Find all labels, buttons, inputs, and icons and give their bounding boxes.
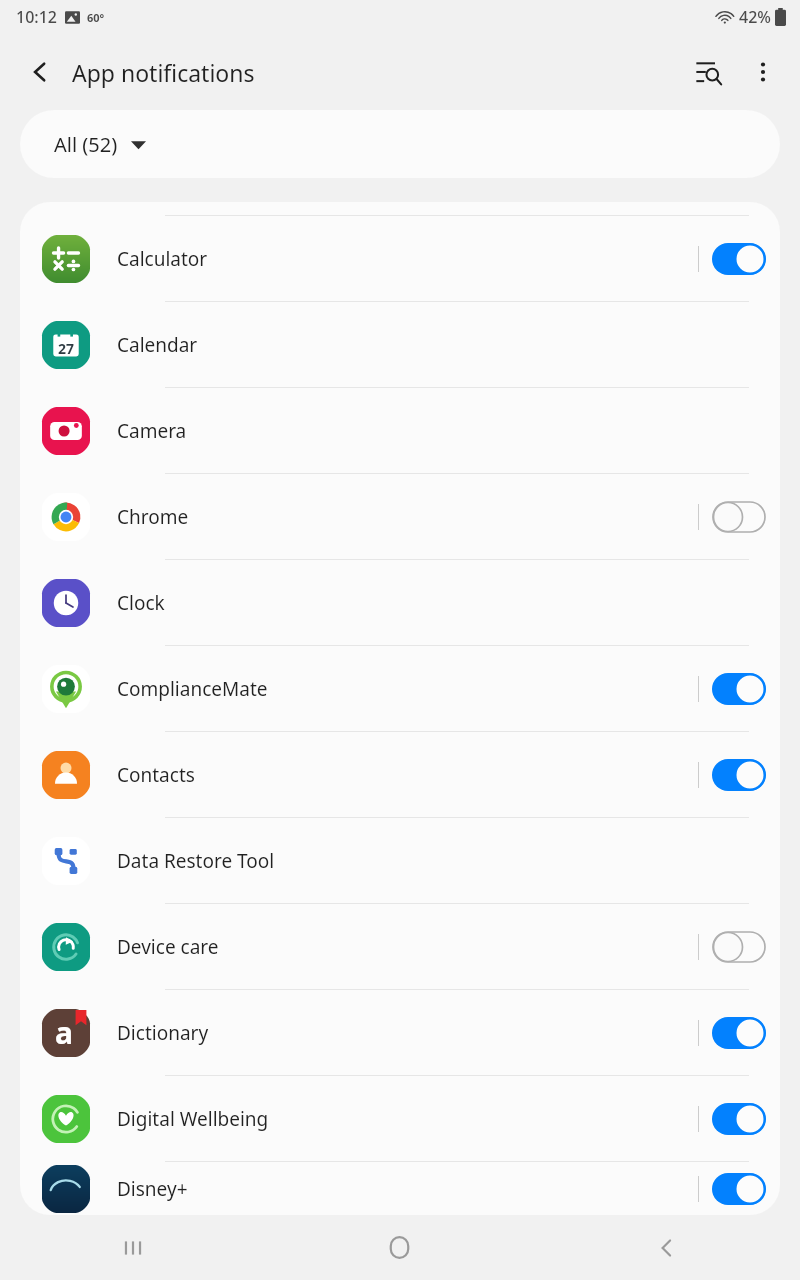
button[interactable]: All (52): [20, 110, 780, 178]
button[interactable]: Toggle notifications for Disney+: [712, 1173, 766, 1205]
button[interactable]: Toggle notifications for Digital Wellbei…: [712, 1103, 766, 1135]
staticText: All (52): [54, 131, 118, 158]
button[interactable]: Chrome: [20, 474, 780, 559]
staticText: 60°: [87, 10, 105, 25]
button[interactable]: Data Restore Tool: [20, 818, 780, 903]
staticText: Contacts: [117, 762, 698, 788]
button[interactable]: Home: [266, 1215, 533, 1280]
button[interactable]: Back: [533, 1215, 800, 1280]
button[interactable]: Search: [680, 44, 736, 100]
staticText: Chrome: [117, 504, 698, 530]
staticText: Device care: [117, 934, 698, 960]
staticText: Clock: [117, 590, 766, 616]
button[interactable]: Camera: [20, 388, 780, 473]
button[interactable]: Disney+: [20, 1162, 780, 1215]
button[interactable]: Toggle notifications for Chrome: [712, 501, 766, 533]
button[interactable]: ComplianceMate: [20, 646, 780, 731]
button[interactable]: Toggle notifications for Dictionary: [712, 1017, 766, 1049]
button[interactable]: Toggle notifications for Calculator: [712, 243, 766, 275]
button[interactable]: Device care: [20, 904, 780, 989]
button[interactable]: Digital Wellbeing: [20, 1076, 780, 1161]
button[interactable]: Contacts: [20, 732, 780, 817]
staticText: Digital Wellbeing: [117, 1106, 698, 1132]
staticText: Dictionary: [117, 1020, 698, 1046]
button[interactable]: Back: [12, 44, 68, 100]
staticText: Data Restore Tool: [117, 848, 766, 874]
button[interactable]: Toggle notifications for ComplianceMate: [712, 673, 766, 705]
button[interactable]: a: [20, 990, 780, 1075]
button[interactable]: Calculator: [20, 216, 780, 301]
button[interactable]: Clock: [20, 560, 780, 645]
staticText: 10:12: [16, 6, 57, 28]
staticText: 27: [58, 339, 75, 358]
staticText: Calculator: [117, 246, 698, 272]
button[interactable]: 27: [20, 302, 780, 387]
button[interactable]: Recent apps: [0, 1215, 266, 1280]
button[interactable]: Toggle notifications for Contacts: [712, 759, 766, 791]
staticText: Calendar: [117, 332, 766, 358]
staticText: 42%: [739, 6, 771, 28]
button[interactable]: Toggle notifications for Device care: [712, 931, 766, 963]
staticText: a: [55, 1012, 73, 1053]
staticText: ComplianceMate: [117, 676, 698, 702]
staticText: Camera: [117, 418, 766, 444]
staticText: App notifications: [72, 57, 680, 88]
staticText: Disney+: [117, 1176, 698, 1202]
button[interactable]: More options: [736, 45, 790, 99]
